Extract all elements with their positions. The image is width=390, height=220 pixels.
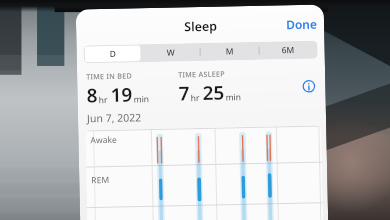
- staticText: 6M: [281, 44, 295, 56]
- staticText: hr: [98, 94, 108, 106]
- button[interactable]: 6M: [258, 41, 318, 60]
- staticText: M: [225, 45, 234, 57]
- button[interactable]: About sleep data: [298, 76, 319, 96]
- staticText: Awake: [90, 134, 117, 146]
- staticText: 8: [86, 82, 98, 108]
- staticText: Done: [286, 16, 317, 32]
- button[interactable]: D: [83, 44, 142, 63]
- staticText: D: [109, 48, 117, 60]
- staticText: REM: [91, 174, 109, 186]
- staticText: hr: [190, 92, 200, 104]
- staticText: 19: [110, 81, 133, 108]
- button[interactable]: M: [199, 42, 259, 61]
- staticText: 7: [178, 80, 190, 106]
- staticText: W: [166, 47, 175, 59]
- staticText: Jun 7, 2022: [87, 110, 142, 125]
- staticText: Sleep: [184, 18, 217, 34]
- staticText: min: [133, 93, 150, 105]
- staticText: 25: [202, 79, 225, 106]
- button[interactable]: Done: [286, 16, 317, 32]
- button[interactable]: W: [141, 43, 200, 62]
- staticText: min: [225, 91, 242, 103]
- staticText: TIME IN BED: [86, 70, 132, 81]
- staticText: TIME ASLEEP: [178, 68, 225, 79]
